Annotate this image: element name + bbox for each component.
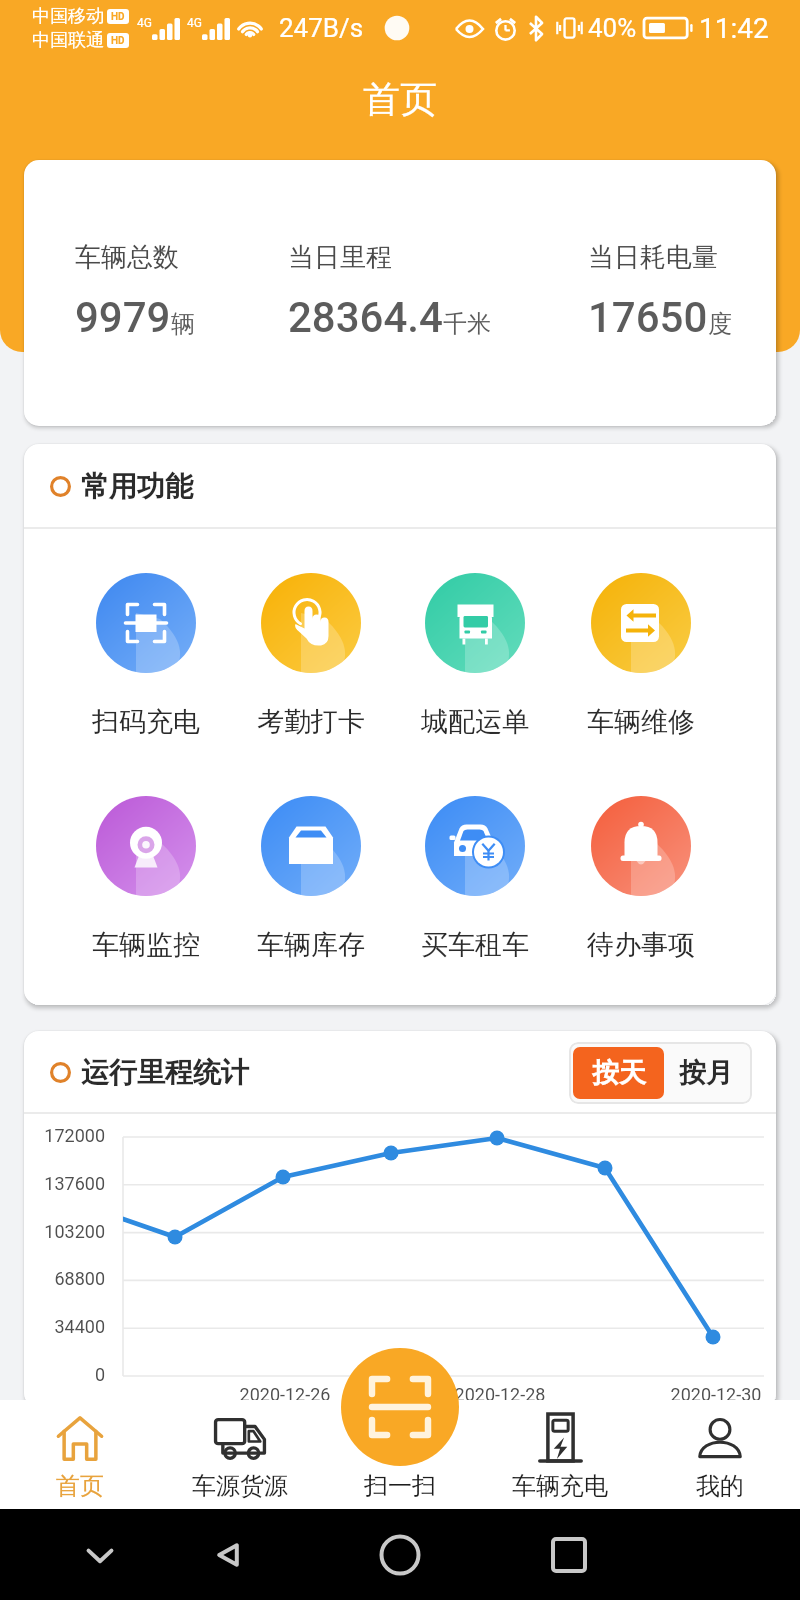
staticText: 扫一扫 [364, 1471, 436, 1501]
button[interactable]: 车辆充电 [480, 1400, 640, 1509]
staticText: 2020-12-30 [656, 1384, 776, 1405]
staticText: 运行里程统计 [81, 1055, 249, 1090]
staticText: 车辆监控 [92, 928, 200, 962]
button[interactable]: 车辆库存 [229, 796, 393, 962]
staticText: 当日里程 [288, 241, 392, 274]
staticText: 首页 [56, 1471, 104, 1501]
staticText: 17650 [588, 293, 708, 342]
staticText: 首页 [363, 76, 437, 123]
staticText: 按天 [592, 1056, 646, 1090]
button[interactable]: 待办事项 [559, 796, 723, 962]
staticText: 40% [588, 13, 637, 43]
button[interactable]: 按月 [664, 1047, 748, 1099]
staticText: 137600 [24, 1173, 105, 1194]
staticText: 买车租车 [421, 928, 529, 962]
staticText: 常用功能 [81, 469, 193, 504]
button[interactable]: 扫码充电 [64, 573, 228, 739]
staticText: 按月 [679, 1056, 733, 1090]
button[interactable]: 我的 [640, 1400, 800, 1509]
staticText: 中国移动 [32, 5, 104, 28]
staticText: 0 [24, 1364, 105, 1385]
button[interactable]: Recents [547, 1533, 591, 1577]
staticText: 城配运单 [421, 705, 529, 739]
staticText: 172000 [24, 1125, 105, 1146]
staticText: 28364.4 [288, 293, 443, 342]
staticText: 车辆总数 [75, 241, 179, 274]
button[interactable]: 扫一扫 [341, 1348, 459, 1466]
staticText: 我的 [696, 1471, 744, 1501]
button[interactable]: 车辆监控 [64, 796, 228, 962]
staticText: 中国联通 [32, 29, 104, 52]
staticText: 待办事项 [587, 928, 695, 962]
button[interactable]: Home [378, 1533, 422, 1577]
staticText: 车辆维修 [587, 705, 695, 739]
staticText: 103200 [24, 1221, 105, 1242]
button[interactable]: Hide keyboard [78, 1533, 122, 1577]
staticText: 辆 [171, 309, 195, 339]
button[interactable]: 车源货源 [160, 1400, 320, 1509]
button[interactable]: 车辆维修 [559, 573, 723, 739]
button[interactable]: Back [206, 1533, 250, 1577]
staticText: 34400 [24, 1316, 105, 1337]
button[interactable]: 扫一扫 [320, 1400, 480, 1509]
button[interactable]: 考勤打卡 [229, 573, 393, 739]
staticText: 4G [137, 16, 152, 30]
staticText: 68800 [24, 1268, 105, 1289]
staticText: 11:42 [699, 12, 769, 45]
staticText: 9979 [75, 293, 171, 342]
staticText: 度 [708, 309, 732, 339]
staticText: 考勤打卡 [257, 705, 365, 739]
staticText: 4G [187, 16, 202, 30]
staticText: 2020-12-26 [225, 1384, 345, 1405]
staticText: HD [111, 35, 125, 47]
staticText: 当日耗电量 [588, 241, 718, 274]
staticText: 车辆充电 [512, 1471, 608, 1501]
staticText: 2020-12-28 [440, 1384, 560, 1405]
staticText: 扫码充电 [92, 705, 200, 739]
button[interactable]: 按天 [573, 1047, 664, 1099]
staticText: 车辆库存 [257, 928, 365, 962]
button[interactable]: 买车租车 [393, 796, 557, 962]
staticText: 车源货源 [192, 1471, 288, 1501]
staticText: HD [111, 11, 125, 23]
button[interactable]: 城配运单 [393, 573, 557, 739]
button[interactable]: 首页 [0, 1400, 160, 1509]
staticText: 247B/s [279, 13, 364, 43]
staticText: 千米 [443, 309, 491, 339]
